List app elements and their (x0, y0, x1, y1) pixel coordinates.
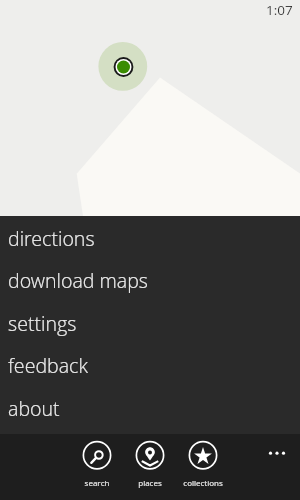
button[interactable]: directions (0, 217, 300, 259)
staticText: places (120, 477, 180, 488)
button[interactable]: download maps (0, 259, 300, 301)
button[interactable]: feedback (0, 344, 300, 386)
button[interactable]: search (67, 434, 127, 488)
staticText: feedback (8, 352, 88, 379)
button[interactable]: settings (0, 302, 300, 344)
button[interactable]: places (120, 434, 180, 488)
button[interactable]: More options (262, 439, 292, 469)
staticText: about (8, 395, 60, 422)
staticText: settings (8, 310, 77, 337)
button[interactable]: about (0, 387, 300, 429)
staticText: directions (8, 225, 95, 252)
staticText: download maps (8, 267, 148, 294)
staticText: collections (173, 477, 233, 488)
staticText: 1:07 (266, 1, 293, 19)
staticText: search (67, 477, 127, 488)
button[interactable]: collections (173, 434, 233, 488)
